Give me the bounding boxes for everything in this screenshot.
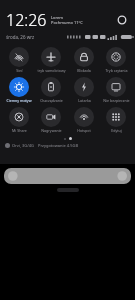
button[interactable]: Hotspot [68,105,100,135]
button[interactable]: Settings [115,13,129,27]
staticText: Pochmurno 11°C [51,20,83,25]
staticText: Orvi, 3G/4G [12,143,34,148]
staticText: Edytuj [111,128,122,133]
button[interactable]: Nagrywanie [35,105,67,135]
button[interactable]: Latarka [68,75,100,105]
staticText: Hotspot [77,128,91,133]
staticText: Sieć [16,68,23,73]
staticText: Przygotowanie 4.5GB [38,143,79,148]
button[interactable]: Brightness [4,168,131,184]
staticText: tryb samolotowy [37,68,66,73]
staticText: Blokada [77,68,91,73]
staticText: Nie bezpiecznie [103,98,130,103]
button[interactable]: Mi Share [3,105,35,135]
staticText: Latarka [78,98,91,103]
staticText: Mi Share [12,128,27,133]
staticText: Ciemny motyw [6,98,32,103]
staticText: Oszczędzanie [40,98,63,103]
staticText: 12:26 [6,9,47,31]
button[interactable]: tryb samolotowy [35,45,67,75]
staticText: środa, 26 wrz [6,34,35,40]
button[interactable]: Blokada [68,45,100,75]
staticText: Nagrywanie [41,128,62,133]
button[interactable]: Tryb czytania [100,45,132,75]
staticText: Lorem [51,15,64,20]
button[interactable]: Edytuj [100,105,132,135]
button[interactable]: Ciemny motyw [3,75,35,105]
staticText: Tryb czytania [105,68,128,73]
button[interactable]: Sieć [3,45,35,75]
button[interactable]: Oszczędzanie [35,75,67,105]
button[interactable]: Nie bezpiecznie [100,75,132,105]
